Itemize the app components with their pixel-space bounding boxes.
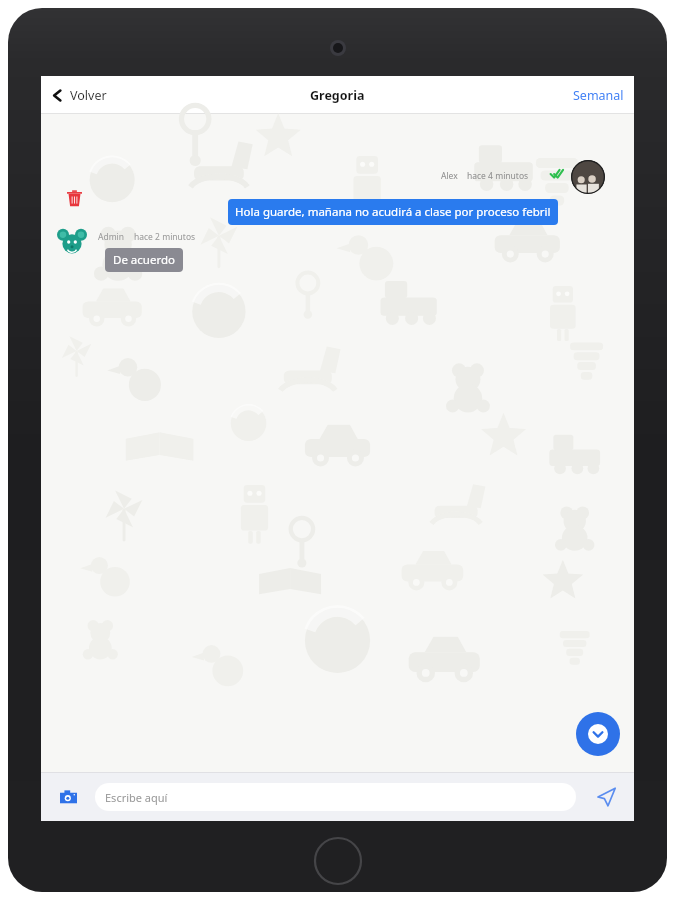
staticText: Alex <box>441 170 458 182</box>
button[interactable]: Ir al final <box>576 712 620 756</box>
staticText: Escribe aquí <box>105 790 168 805</box>
button[interactable]: Volver <box>41 83 117 108</box>
button[interactable]: Semanal <box>563 81 634 110</box>
staticText: Volver <box>70 87 107 104</box>
staticText: Admin <box>98 231 125 243</box>
button[interactable]: Avatar de Admin <box>57 227 87 257</box>
button[interactable]: Escribe aquí <box>95 783 576 811</box>
staticText: Gregoria <box>310 87 365 104</box>
staticText: hace 2 minutos <box>134 231 196 243</box>
button[interactable]: Adjuntar foto <box>51 780 85 814</box>
button[interactable]: Eliminar mensaje <box>66 190 83 207</box>
button[interactable]: De acuerdo <box>105 248 183 272</box>
staticText: Semanal <box>573 87 624 104</box>
staticText: De acuerdo <box>113 252 175 268</box>
button[interactable]: Foto de perfil de Alex <box>571 160 605 194</box>
staticText: hace 4 minutos <box>467 170 529 182</box>
button[interactable]: Hola guarde, mañana no acudirá a clase p… <box>228 199 558 225</box>
button[interactable]: Enviar <box>588 779 624 815</box>
staticText: Hola guarde, mañana no acudirá a clase p… <box>235 204 551 220</box>
